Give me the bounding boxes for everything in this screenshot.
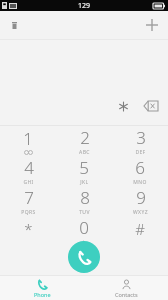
- button[interactable]: 5: [56, 156, 112, 186]
- staticText: PQRS: [21, 209, 36, 216]
- staticText: 1: [23, 127, 33, 150]
- staticText: 2: [80, 126, 90, 149]
- staticText: *: [24, 219, 33, 239]
- staticText: #: [135, 219, 145, 239]
- button[interactable]: 2: [56, 126, 112, 156]
- staticText: Contacts: [115, 291, 138, 298]
- staticText: 5: [79, 156, 89, 179]
- button[interactable]: #: [112, 216, 168, 246]
- button[interactable]: 6: [112, 156, 168, 186]
- staticText: 9: [136, 186, 146, 209]
- button[interactable]: Call: [68, 241, 100, 273]
- button[interactable]: 8: [56, 186, 112, 216]
- button[interactable]: Add star: [112, 95, 134, 117]
- staticText: 7: [24, 186, 34, 209]
- button[interactable]: *: [0, 216, 56, 246]
- staticText: ABC: [79, 149, 90, 156]
- button[interactable]: 7: [0, 186, 56, 216]
- staticText: 4: [24, 156, 34, 179]
- button[interactable]: Contacts: [84, 276, 168, 300]
- button[interactable]: 4: [0, 156, 56, 186]
- button[interactable]: 0: [56, 216, 112, 246]
- staticText: TUV: [79, 209, 90, 216]
- staticText: JKL: [80, 179, 89, 186]
- button[interactable]: 9: [112, 186, 168, 216]
- button[interactable]: Keypad options: [6, 17, 22, 33]
- staticText: GHI: [23, 179, 34, 186]
- staticText: 0: [79, 216, 89, 239]
- staticText: 6: [135, 156, 145, 179]
- staticText: +: [82, 239, 86, 246]
- button[interactable]: Add contact: [141, 14, 163, 36]
- staticText: WXYZ: [133, 209, 148, 216]
- staticText: Phone: [34, 291, 51, 298]
- staticText: 8: [80, 186, 90, 209]
- staticText: DEF: [135, 149, 146, 156]
- staticText: MNO: [133, 179, 147, 186]
- button[interactable]: Backspace: [138, 93, 164, 119]
- staticText: 129: [78, 1, 91, 11]
- staticText: 3: [136, 126, 146, 149]
- button[interactable]: Phone: [0, 276, 84, 300]
- button[interactable]: 1: [0, 126, 56, 156]
- button[interactable]: 3: [112, 126, 168, 156]
